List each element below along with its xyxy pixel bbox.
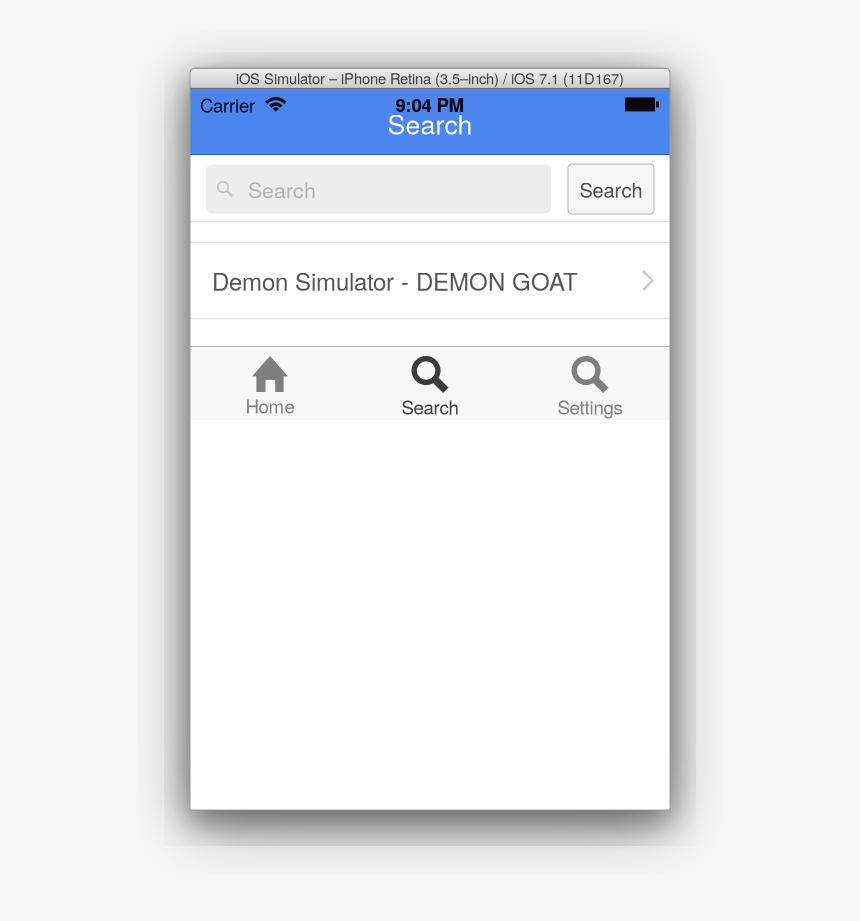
staticText: Settings	[557, 393, 622, 420]
button[interactable]: Home	[190, 347, 350, 420]
staticText: Search	[401, 393, 458, 420]
staticText: Search	[248, 174, 316, 204]
button[interactable]: Search	[350, 347, 510, 420]
staticText: Search	[579, 175, 642, 203]
button[interactable]: Search	[568, 164, 654, 214]
staticText: Demon Simulator - DEMON GOAT	[212, 263, 578, 298]
staticText: Home	[245, 392, 294, 419]
button[interactable]: Search	[206, 164, 551, 213]
staticText: Search	[387, 104, 472, 142]
button[interactable]: Demon Simulator - DEMON GOAT	[190, 243, 670, 318]
staticText: iOS Simulator – iPhone Retina (3.5–inch)…	[236, 67, 624, 88]
staticText: 9:04 PM	[395, 91, 464, 118]
staticText: Carrier	[200, 91, 255, 118]
button[interactable]: Settings	[510, 347, 670, 420]
